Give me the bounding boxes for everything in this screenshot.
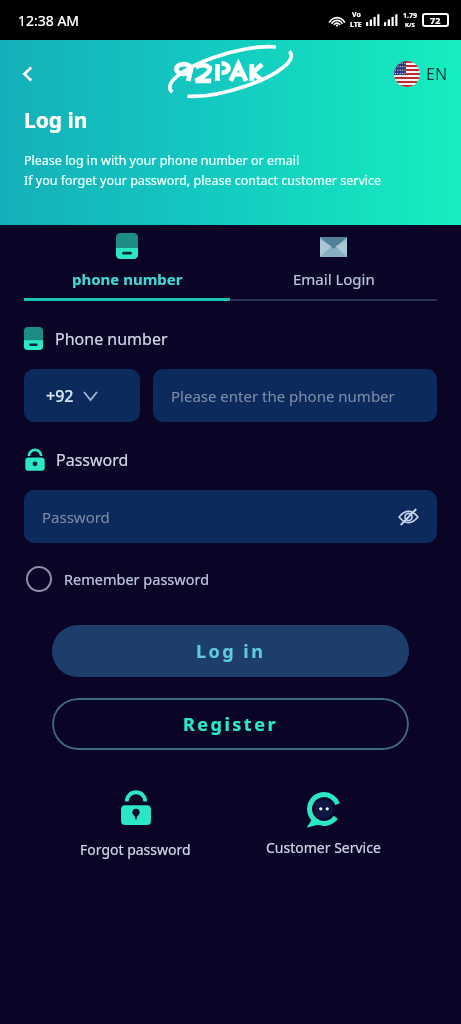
staticText: Password bbox=[42, 507, 110, 527]
staticText: 72 bbox=[430, 14, 441, 26]
button[interactable]: Back bbox=[6, 52, 50, 96]
staticText: Log in bbox=[196, 639, 266, 664]
staticText: +92 bbox=[46, 385, 74, 407]
staticText: 12:38 AM bbox=[18, 11, 80, 30]
button[interactable]: Email Login bbox=[230, 233, 437, 298]
button[interactable]: +92 bbox=[24, 369, 140, 422]
staticText: 1.79 bbox=[403, 11, 417, 21]
button[interactable]: Remember password bbox=[24, 563, 212, 595]
staticText: Log in bbox=[24, 106, 88, 135]
button[interactable]: phone number bbox=[24, 233, 230, 298]
button[interactable]: Show password bbox=[391, 500, 425, 534]
button[interactable]: Log in bbox=[52, 625, 409, 677]
staticText: EN bbox=[426, 63, 448, 85]
button[interactable]: Customer Service bbox=[248, 786, 399, 861]
staticText: If you forget your password, please cont… bbox=[24, 172, 382, 189]
staticText: Please log in with your phone number or … bbox=[24, 152, 300, 169]
button[interactable]: Register bbox=[52, 698, 409, 750]
staticText: Email Login bbox=[293, 269, 375, 289]
button[interactable]: Password bbox=[24, 490, 437, 543]
staticText: Customer Service bbox=[266, 838, 381, 857]
staticText: Forgot password bbox=[80, 840, 191, 859]
staticText: LTE bbox=[350, 20, 362, 30]
staticText: Register bbox=[183, 712, 278, 737]
button[interactable]: Please enter the phone number bbox=[153, 369, 437, 422]
staticText: Vo bbox=[352, 10, 361, 20]
staticText: K/S bbox=[405, 21, 415, 29]
staticText: Phone number bbox=[55, 328, 168, 350]
staticText: phone number bbox=[72, 269, 183, 289]
staticText: Please enter the phone number bbox=[171, 386, 395, 406]
button[interactable]: EN bbox=[389, 56, 453, 92]
button[interactable]: Forgot password bbox=[62, 786, 209, 863]
staticText: Remember password bbox=[64, 569, 210, 589]
staticText: Password bbox=[56, 449, 129, 471]
